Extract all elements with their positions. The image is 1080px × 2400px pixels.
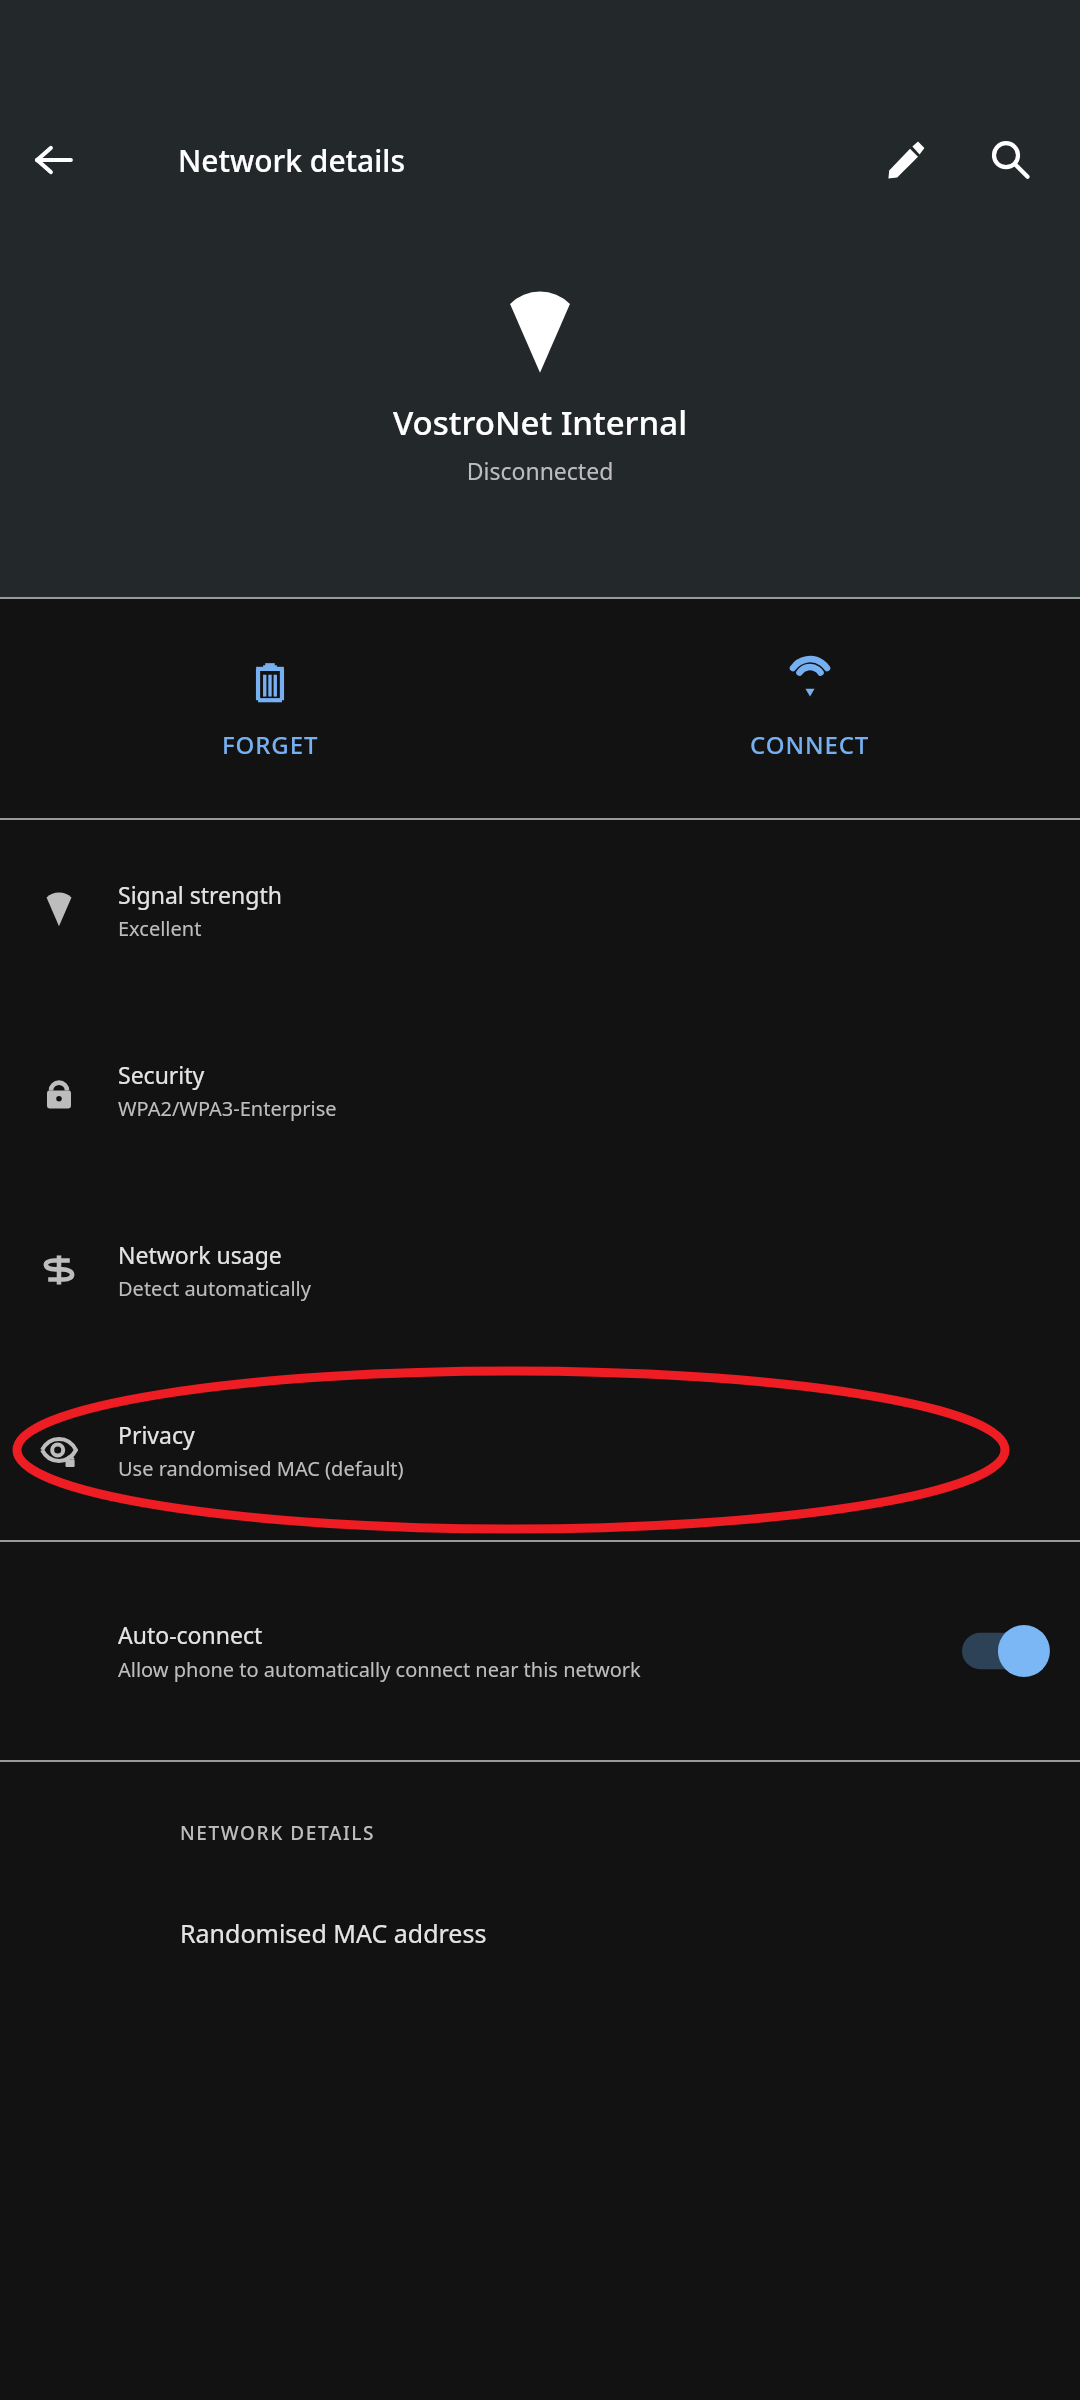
button[interactable]: Randomised MAC address	[0, 1916, 1080, 1950]
button[interactable]: Security	[0, 1000, 1080, 1180]
staticText: Allow phone to automatically connect nea…	[118, 1656, 641, 1683]
button[interactable]: Back	[0, 108, 108, 212]
staticText: VostroNet Internal	[0, 400, 1080, 445]
staticText: Auto-connect	[118, 1619, 263, 1650]
staticText: NETWORK DETAILS	[180, 1820, 376, 1846]
staticText: Disconnected	[0, 455, 1080, 486]
staticText: FORGET	[222, 728, 319, 761]
button[interactable]: FORGET	[0, 599, 540, 818]
staticText: Randomised MAC address	[180, 1916, 487, 1950]
staticText: Network usage	[118, 1239, 282, 1270]
staticText: WPA2/WPA3-Enterprise	[118, 1095, 337, 1122]
button[interactable]: Network usage	[0, 1180, 1080, 1360]
button[interactable]: CONNECT	[540, 599, 1080, 818]
button[interactable]: Edit	[854, 108, 958, 212]
staticText: Privacy	[118, 1419, 195, 1450]
button[interactable]: Auto-connect	[0, 1542, 1080, 1760]
staticText: CONNECT	[750, 728, 870, 761]
staticText: Detect automatically	[118, 1275, 311, 1302]
staticText: Excellent	[118, 915, 202, 942]
staticText: Security	[118, 1059, 205, 1090]
staticText: Network details	[178, 140, 854, 181]
button[interactable]: Privacy	[0, 1360, 1080, 1540]
button[interactable]: Signal strength	[0, 820, 1080, 1000]
button[interactable]: Search	[958, 108, 1062, 212]
staticText: Signal strength	[118, 879, 282, 910]
staticText: Use randomised MAC (default)	[118, 1455, 404, 1482]
